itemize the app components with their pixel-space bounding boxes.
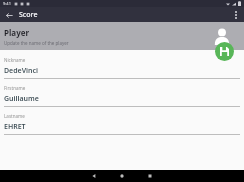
staticText: DedeVinci xyxy=(4,66,39,76)
staticText: Guillaume xyxy=(4,94,39,104)
button[interactable]: Firstname xyxy=(0,85,244,113)
button[interactable]: More options xyxy=(230,9,242,21)
staticText: EHRET xyxy=(4,122,26,132)
button[interactable]: Back xyxy=(3,9,15,21)
button[interactable]: Nickname xyxy=(0,57,244,85)
button[interactable]: Lastname xyxy=(0,113,244,141)
button[interactable]: Player avatar xyxy=(211,25,233,47)
staticText: Player xyxy=(4,27,30,38)
staticText: 9:41 xyxy=(3,1,11,6)
staticText: Lastname xyxy=(4,113,25,119)
button[interactable]: Home xyxy=(108,170,136,182)
button[interactable]: Save xyxy=(215,42,234,61)
staticText: Update the name of the player xyxy=(4,40,69,46)
button[interactable]: Recent apps xyxy=(136,170,164,182)
staticText: Score xyxy=(19,10,38,20)
button[interactable]: Back xyxy=(80,170,108,182)
staticText: Firstname xyxy=(4,85,26,91)
staticText: Nickname xyxy=(4,57,26,63)
